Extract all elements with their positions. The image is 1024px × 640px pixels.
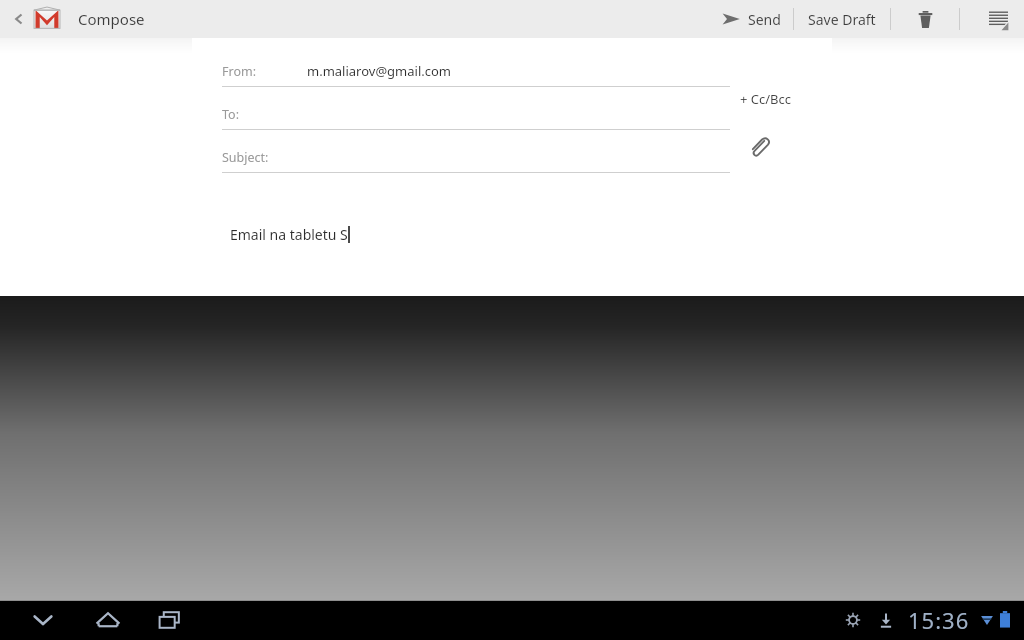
button[interactable]: + Cc/Bcc — [740, 90, 792, 108]
button[interactable]: Recent apps — [146, 600, 194, 640]
staticText: Save Draft — [808, 10, 876, 29]
staticText: m.maliarov@gmail.com — [307, 62, 451, 80]
button[interactable]: More options — [972, 0, 1024, 38]
staticText: From: — [222, 63, 257, 80]
staticText: Subject: — [222, 149, 269, 166]
button[interactable]: To: — [222, 95, 730, 138]
button[interactable]: Attach file — [742, 130, 776, 164]
staticText: Compose — [78, 9, 145, 29]
button[interactable]: Discard — [903, 0, 947, 38]
staticText: 15:36 — [908, 605, 970, 635]
button[interactable]: From: — [222, 52, 730, 95]
button[interactable]: Hide keyboard — [20, 600, 66, 640]
staticText: + Cc/Bcc — [740, 90, 792, 108]
button[interactable]: Back — [6, 0, 66, 38]
button[interactable]: Save Draft — [806, 10, 878, 29]
button[interactable]: Subject: — [222, 138, 730, 181]
staticText: Send — [748, 10, 781, 29]
staticText: Email na tabletu S — [230, 225, 348, 244]
staticText: To: — [222, 106, 239, 123]
button[interactable]: Send — [721, 9, 781, 29]
button[interactable]: Home — [84, 600, 132, 640]
